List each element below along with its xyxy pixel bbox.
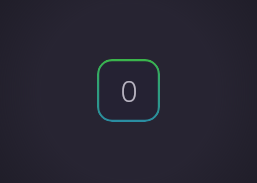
button[interactable]: Tap to increment counter: [97, 59, 160, 122]
staticText: 0: [120, 70, 138, 111]
